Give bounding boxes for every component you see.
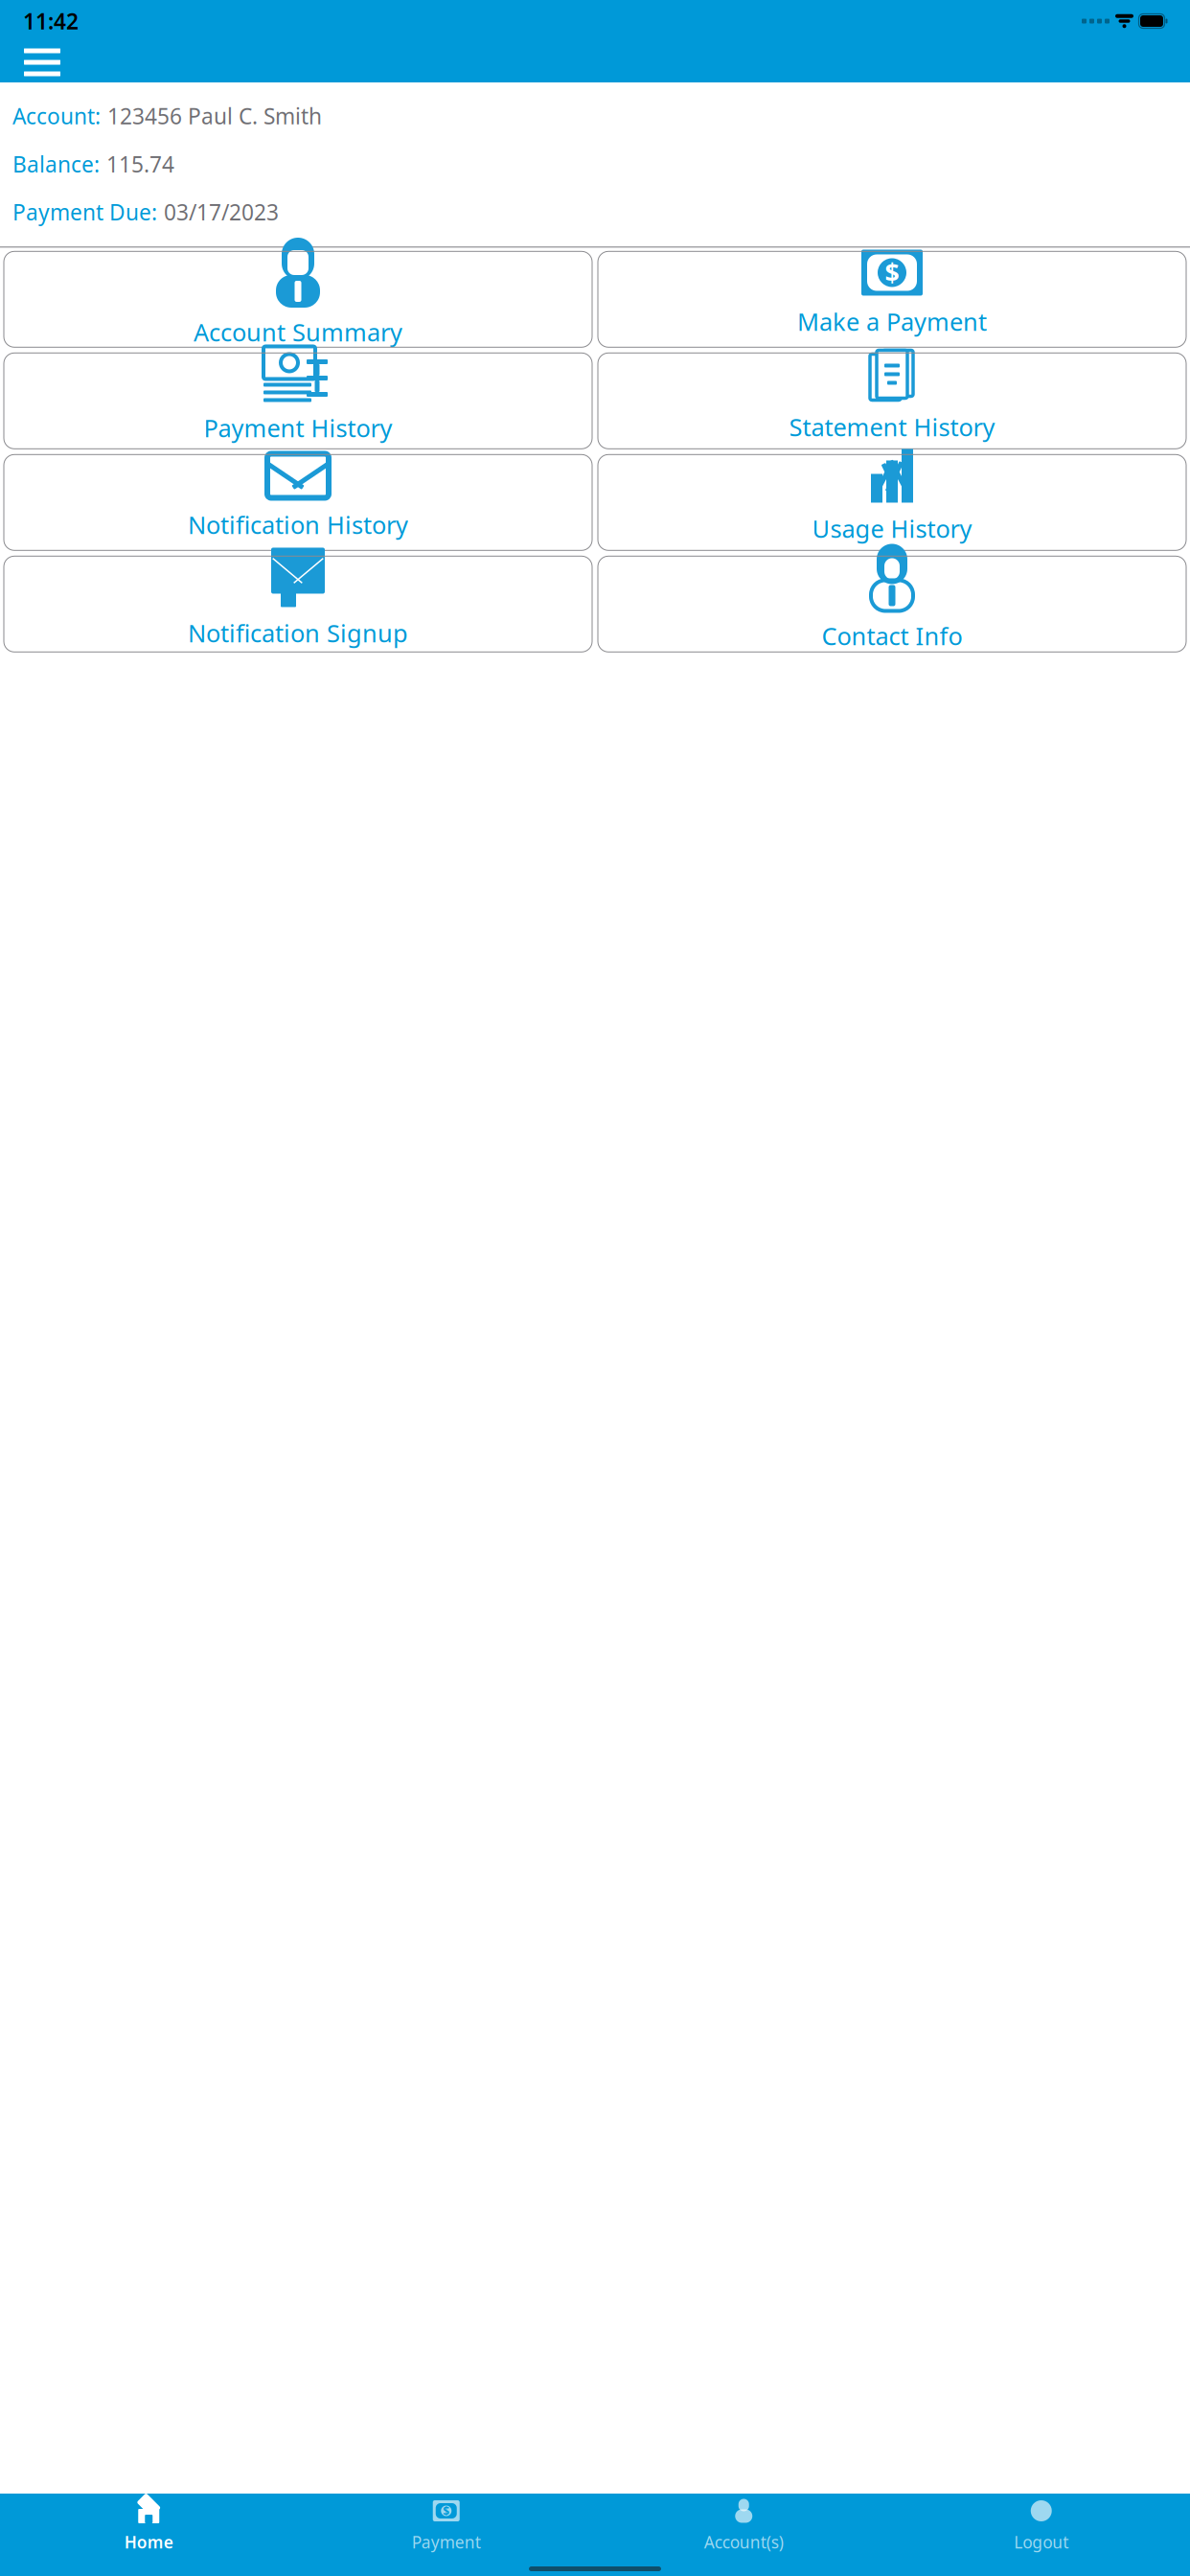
staticText: 123456 Paul C. Smith (107, 102, 322, 130)
staticText: Balance: (12, 150, 100, 178)
staticText: Payment (412, 2531, 481, 2553)
button[interactable]: Logout (892, 2490, 1190, 2559)
staticText: Payment Due: (12, 198, 157, 226)
button[interactable]: $ (598, 251, 1186, 347)
staticText: Logout (1014, 2531, 1069, 2553)
staticText: Account(s) (704, 2531, 784, 2553)
staticText: Account Summary (194, 316, 402, 348)
button[interactable]: Contact Info (598, 556, 1186, 652)
button[interactable]: Menu (14, 41, 70, 84)
button[interactable]: Notification Signup (4, 556, 592, 652)
staticText: Contact Info (822, 620, 962, 652)
button[interactable]: Home (0, 2490, 297, 2559)
staticText: $ (443, 2503, 450, 2518)
button[interactable]: Usage History (598, 455, 1186, 550)
button[interactable]: Payment History (4, 353, 592, 449)
staticText: Make a Payment (797, 305, 987, 337)
button[interactable]: Notification History (4, 455, 592, 550)
button[interactable]: $ (297, 2490, 595, 2559)
staticText: Home (124, 2531, 173, 2553)
staticText: 03/17/2023 (164, 198, 279, 226)
staticText: Notification History (188, 508, 408, 541)
button[interactable]: Statement History (598, 353, 1186, 449)
staticText: Statement History (789, 411, 995, 443)
button[interactable]: Account Summary (4, 251, 592, 347)
staticText: Account: (12, 102, 101, 130)
staticText: 11:42 (23, 7, 79, 35)
staticText: Usage History (812, 512, 972, 544)
button[interactable]: Account(s) (595, 2490, 892, 2559)
staticText: Notification Signup (188, 617, 408, 649)
staticText: $ (885, 256, 899, 290)
staticText: Payment History (204, 412, 392, 444)
staticText: 115.74 (106, 150, 174, 178)
